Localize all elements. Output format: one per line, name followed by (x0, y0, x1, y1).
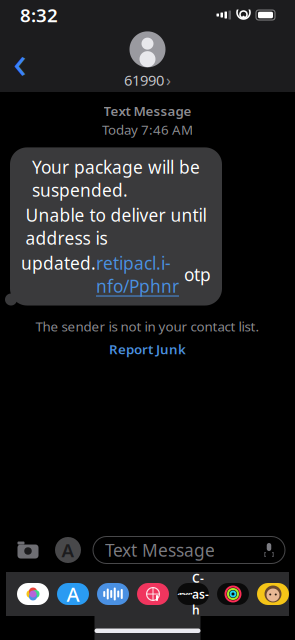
staticText: A (61, 538, 74, 562)
button[interactable]: Apple Cash (177, 583, 209, 605)
staticText: Today 7:46 AM (102, 121, 193, 138)
button[interactable]: App Store (57, 583, 89, 605)
button[interactable]: Text Message (93, 536, 285, 563)
button[interactable]: Memoji (257, 583, 289, 605)
button[interactable]: Audio Message (97, 583, 129, 605)
staticText: A (66, 581, 79, 607)
button[interactable]: Report Junk (101, 337, 194, 361)
button[interactable]: Photos (17, 583, 49, 605)
button[interactable]: Back (0, 39, 40, 83)
staticText: updated. (21, 251, 96, 297)
button[interactable]: Camera (13, 535, 43, 565)
button[interactable]: Music (137, 583, 169, 605)
button[interactable]: Fitness (217, 583, 249, 605)
staticText: › (166, 69, 171, 91)
staticText: Your package will be suspended. (32, 155, 200, 201)
staticText: Unable to deliver until address is (25, 203, 206, 249)
staticText: The sender is not in your contact list. (35, 317, 259, 335)
staticText: ‹ (13, 31, 27, 91)
staticText: 61990 (124, 70, 164, 90)
staticText: Text Message (103, 102, 191, 120)
staticText: retipacl.info/Pphnr (96, 251, 179, 297)
button[interactable]: App Store (53, 535, 83, 565)
staticText: Report Junk (109, 340, 186, 358)
staticText: 8:32 (20, 3, 58, 27)
staticText: Text Message (105, 538, 215, 561)
staticText: otp (179, 263, 211, 286)
staticText:  (177, 587, 192, 601)
staticText: Cash (192, 570, 209, 618)
